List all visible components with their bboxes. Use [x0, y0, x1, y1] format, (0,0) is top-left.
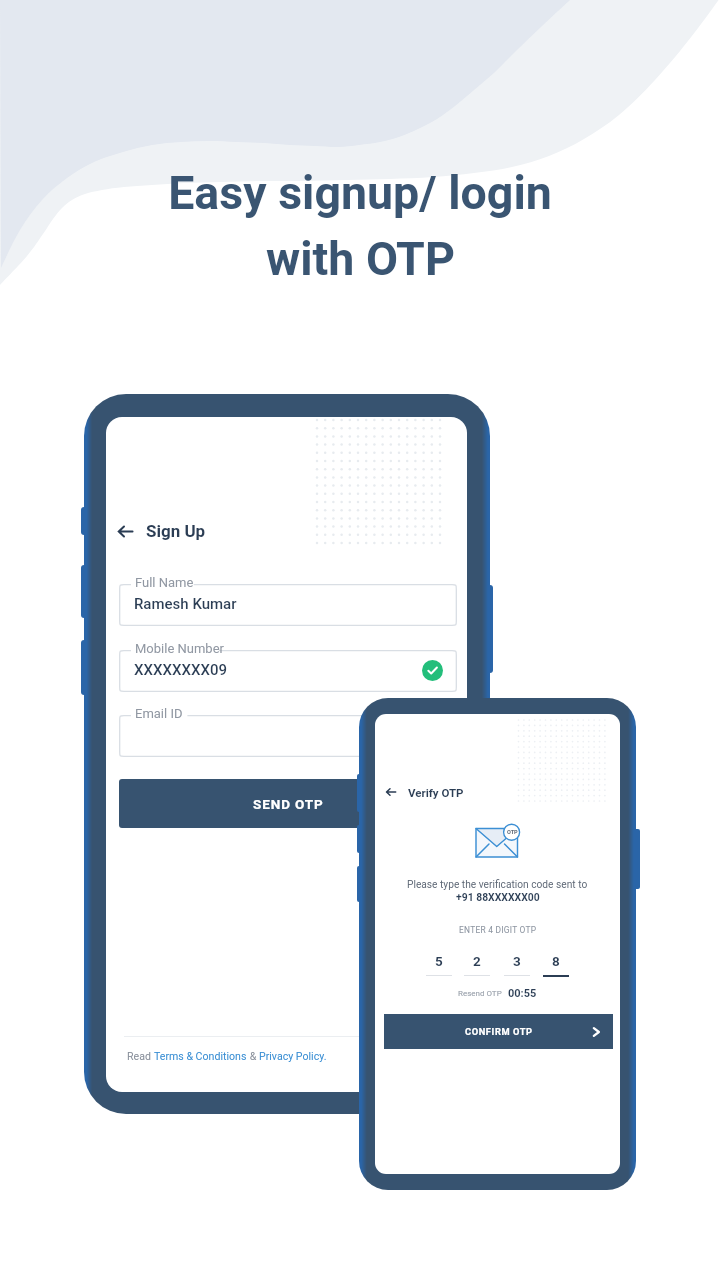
- button[interactable]: Resend OTP: [458, 989, 502, 998]
- staticText: XXXXXXXX09: [134, 661, 227, 679]
- staticText: CONFIRM OTP: [465, 1026, 533, 1037]
- other: Verified: [422, 660, 443, 681]
- button[interactable]: Mobile Number: [119, 650, 457, 692]
- staticText: 00:55: [508, 987, 537, 1000]
- staticText: Mobile Number: [135, 641, 224, 656]
- button[interactable]: 2: [463, 953, 491, 975]
- staticText: Full Name: [135, 575, 194, 590]
- staticText: +91 88XXXXXX00: [456, 891, 540, 903]
- button[interactable]: Full Name: [119, 584, 457, 626]
- button[interactable]: CONFIRM OTP: [384, 1014, 613, 1049]
- staticText: 5: [435, 953, 443, 969]
- staticText: Please type the verification code sent t…: [407, 879, 588, 891]
- button[interactable]: Read: [127, 1050, 327, 1062]
- button[interactable]: Back: [112, 518, 206, 544]
- staticText: 2: [473, 953, 481, 969]
- button[interactable]: Email ID: [119, 715, 457, 757]
- staticText: OTP: [507, 829, 518, 836]
- staticText: Sign Up: [146, 521, 206, 541]
- other: Back: [380, 781, 402, 803]
- staticText: Email ID: [135, 706, 183, 721]
- staticText: 3: [513, 953, 521, 969]
- other: Back: [112, 518, 138, 544]
- staticText: Verify OTP: [408, 786, 464, 799]
- button[interactable]: 8: [542, 953, 570, 975]
- staticText: Terms & Conditions: [154, 1050, 247, 1062]
- staticText: Privacy Policy.: [259, 1050, 327, 1062]
- staticText: SEND OTP: [253, 796, 324, 812]
- staticText: ENTER 4 DIGIT OTP: [459, 925, 537, 935]
- button[interactable]: 5: [425, 953, 453, 975]
- staticText: Read: [127, 1050, 154, 1062]
- staticText: &: [247, 1050, 259, 1062]
- button[interactable]: Back: [380, 781, 464, 803]
- staticText: Easy signup/ login: [168, 166, 552, 220]
- button[interactable]: SEND OTP: [119, 779, 457, 828]
- button[interactable]: 3: [503, 953, 531, 975]
- staticText: with OTP: [266, 232, 455, 286]
- staticText: Ramesh Kumar: [134, 595, 237, 613]
- staticText: 8: [552, 953, 560, 969]
